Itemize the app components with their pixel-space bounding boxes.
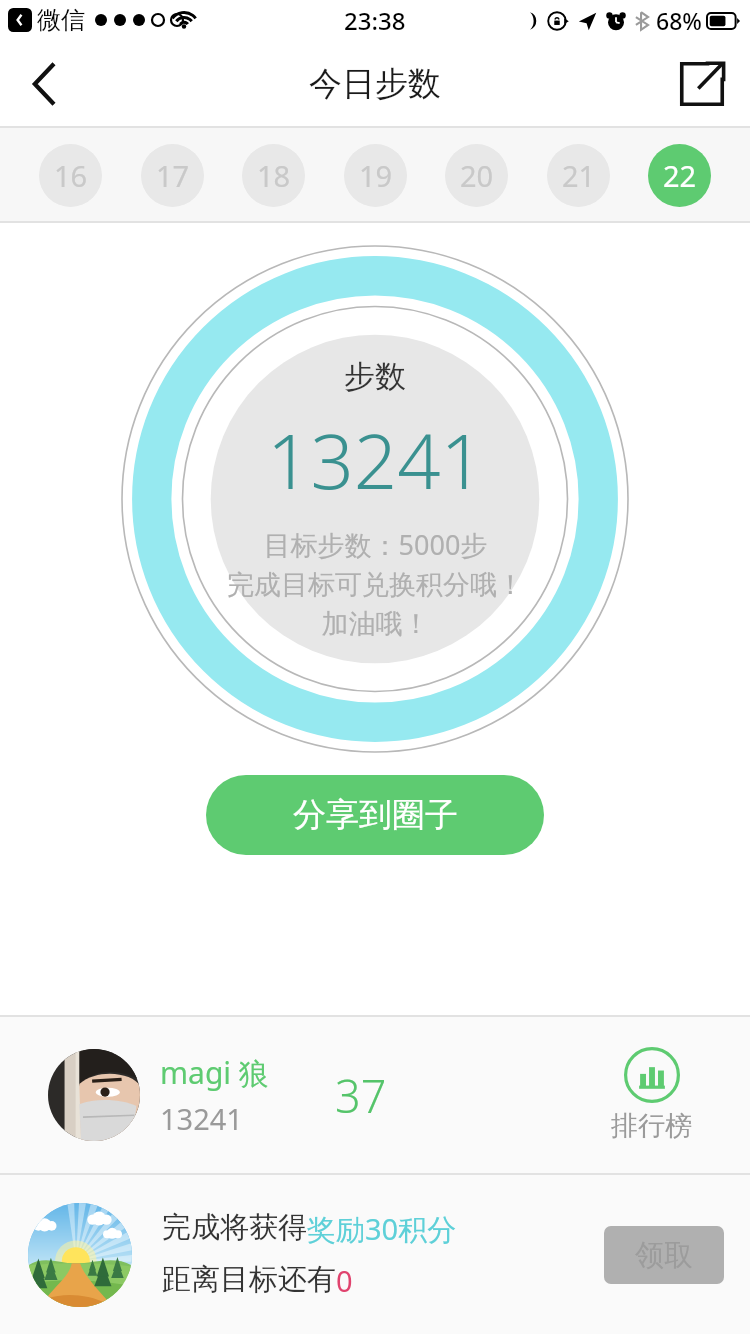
button[interactable]: 22 bbox=[648, 144, 711, 207]
staticText: magi 狼 bbox=[160, 1052, 269, 1093]
staticText: 17 bbox=[156, 156, 190, 195]
staticText: 步数 bbox=[344, 357, 406, 396]
staticText: 13241 bbox=[160, 1099, 243, 1138]
button[interactable]: 17 bbox=[141, 144, 204, 207]
staticText: 0 bbox=[336, 1261, 353, 1300]
staticText: 19 bbox=[359, 156, 393, 195]
staticText: 排行榜 bbox=[611, 1109, 692, 1143]
staticText: 13241 bbox=[267, 408, 484, 512]
button[interactable]: 19 bbox=[344, 144, 407, 207]
button[interactable]: magi 狼 bbox=[0, 1017, 750, 1173]
staticText: 领取 bbox=[635, 1237, 693, 1274]
staticText: 20 bbox=[460, 156, 494, 195]
staticText: 完成将获得 bbox=[162, 1209, 307, 1246]
staticText: 分享到圈子 bbox=[293, 794, 458, 836]
button[interactable]: 领取 bbox=[604, 1226, 724, 1284]
staticText: 37 bbox=[335, 1065, 387, 1126]
staticText: 22 bbox=[663, 156, 697, 195]
staticText: 16 bbox=[54, 156, 88, 195]
button[interactable]: 20 bbox=[445, 144, 508, 207]
button[interactable]: Back bbox=[0, 40, 90, 128]
staticText: 18 bbox=[257, 156, 291, 195]
staticText: 距离目标还有 bbox=[162, 1261, 336, 1298]
button[interactable]: 18 bbox=[242, 144, 305, 207]
button[interactable]: Share bbox=[654, 40, 750, 128]
staticText: 目标步数：5000步 完成目标可兑换积分哦！ 加油哦！ bbox=[227, 526, 524, 641]
staticText: 奖励30积分 bbox=[307, 1209, 457, 1249]
staticText: 微信 bbox=[37, 5, 85, 35]
button[interactable]: 排行榜 bbox=[611, 1047, 692, 1143]
button[interactable]: 分享到圈子 bbox=[206, 775, 544, 855]
button[interactable]: 16 bbox=[39, 144, 102, 207]
staticText: 今日步数 bbox=[309, 63, 441, 105]
button[interactable]: 21 bbox=[547, 144, 610, 207]
staticText: 21 bbox=[562, 156, 596, 195]
staticText: 68% bbox=[656, 5, 702, 36]
staticText: 23:38 bbox=[344, 4, 406, 37]
